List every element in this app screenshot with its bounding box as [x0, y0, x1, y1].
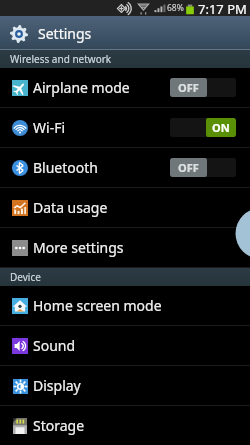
- button[interactable]: More settings: [0, 228, 250, 267]
- staticText: OFF: [178, 160, 199, 175]
- staticText: Wireless and network: [10, 52, 112, 66]
- staticText: Device: [10, 270, 41, 284]
- button[interactable]: Bluetooth: [0, 148, 250, 187]
- button[interactable]: Display: [0, 366, 250, 405]
- button[interactable]: Sound: [0, 326, 250, 365]
- button[interactable]: Toggle off: [170, 158, 236, 177]
- staticText: 68%: [167, 2, 184, 14]
- button[interactable]: Toggle on: [170, 118, 236, 137]
- staticText: OFF: [178, 80, 199, 95]
- staticText: Wi-Fi: [33, 118, 66, 137]
- button[interactable]: Settings: [0, 16, 250, 50]
- button[interactable]: Home screen mode: [0, 286, 250, 325]
- staticText: Home screen mode: [33, 296, 162, 315]
- staticText: ON: [212, 120, 230, 135]
- button[interactable]: Storage: [0, 406, 250, 445]
- staticText: Bluetooth: [33, 158, 98, 177]
- button[interactable]: Airplane mode: [0, 68, 250, 107]
- other: Scroll: [0, 0, 250, 445]
- staticText: More settings: [33, 238, 124, 257]
- staticText: Display: [33, 376, 81, 395]
- button[interactable]: Toggle off: [170, 78, 236, 97]
- staticText: Airplane mode: [33, 78, 130, 97]
- staticText: Storage: [33, 416, 85, 435]
- button[interactable]: Data usage: [0, 188, 250, 227]
- staticText: Settings: [38, 24, 92, 43]
- staticText: Data usage: [33, 198, 108, 217]
- staticText: Sound: [33, 336, 76, 355]
- button[interactable]: Wi-Fi: [0, 108, 250, 147]
- staticText: 7:17 PM: [198, 0, 247, 16]
- other: Settings: [10, 25, 28, 43]
